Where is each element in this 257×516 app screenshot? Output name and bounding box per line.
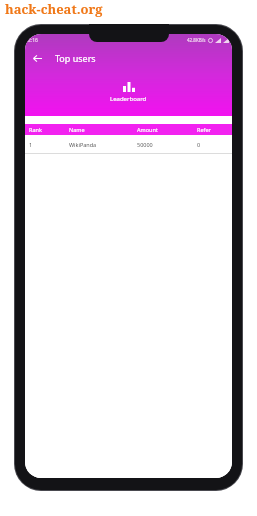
staticText: Rank <box>29 126 42 133</box>
staticText: Name <box>69 126 85 133</box>
staticText: Leaderboard <box>110 95 147 103</box>
staticText: Refer <box>197 126 211 133</box>
staticText: 0 <box>197 141 201 148</box>
staticText: hack-cheat.org <box>5 0 103 18</box>
button[interactable]: 1 <box>25 135 232 153</box>
staticText: 2:16 <box>28 37 38 44</box>
staticText: 1 <box>29 141 33 148</box>
staticText: Amount <box>137 126 158 133</box>
button[interactable]: Back <box>28 49 46 67</box>
staticText: 50000 <box>137 141 153 148</box>
staticText: WikiPanda <box>69 141 97 148</box>
staticText: Top users <box>55 52 96 64</box>
staticText: 42.8KB/s <box>187 37 206 43</box>
